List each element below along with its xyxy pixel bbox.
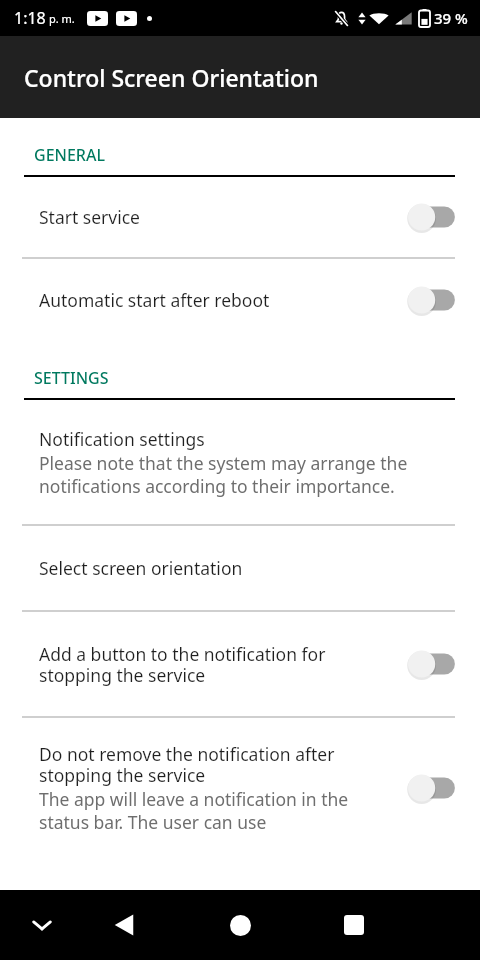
staticText: Automatic start after reboot <box>39 288 270 312</box>
staticText: Select screen orientation <box>39 556 243 580</box>
button[interactable]: Toggle <box>406 283 458 317</box>
button[interactable]: Toggle <box>406 647 458 681</box>
button[interactable]: Notification settings <box>0 400 480 524</box>
button[interactable]: Start service <box>0 177 480 257</box>
staticText: Do not remove the notification after sto… <box>39 742 396 787</box>
button[interactable]: Do not remove the notification after sto… <box>0 718 480 858</box>
staticText: p. m. <box>49 11 75 26</box>
button[interactable]: Recents <box>330 890 378 960</box>
button[interactable]: Toggle <box>406 771 458 805</box>
button[interactable]: Add a button to the notification for sto… <box>0 612 480 716</box>
staticText: Control Screen Orientation <box>24 62 319 93</box>
staticText: Start service <box>39 205 140 229</box>
button[interactable]: Hide <box>22 890 62 960</box>
button[interactable]: Toggle <box>406 200 458 234</box>
staticText: Add a button to the notification for sto… <box>39 642 396 687</box>
staticText: Notification settings <box>39 427 205 451</box>
staticText: 1:18 <box>14 7 46 29</box>
staticText: GENERAL <box>34 144 106 166</box>
staticText: Please note that the system may arrange … <box>39 451 458 498</box>
staticText: SETTINGS <box>34 367 109 389</box>
button[interactable]: Home <box>216 890 264 960</box>
button[interactable]: Back <box>100 890 148 960</box>
staticText: The app will leave a notification in the… <box>39 787 396 834</box>
button[interactable]: Automatic start after reboot <box>0 259 480 341</box>
button[interactable]: Select screen orientation <box>0 526 480 610</box>
staticText: 39 % <box>434 8 468 28</box>
